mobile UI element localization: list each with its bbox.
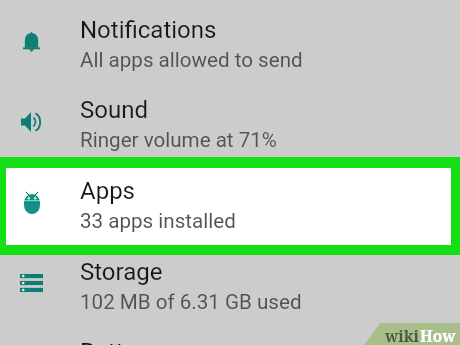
staticText: Storage — [80, 258, 163, 286]
button[interactable]: Sound — [0, 80, 460, 160]
button[interactable]: Notifications — [0, 0, 460, 80]
staticText: Ringer volume at 71% — [80, 128, 277, 152]
other: Storage — [20, 274, 43, 292]
button[interactable]: Apps — [6, 168, 451, 245]
staticText: Notifications — [80, 16, 217, 44]
staticText: Apps — [80, 177, 135, 205]
staticText: 102 MB of 6.31 GB used — [80, 290, 302, 314]
staticText: All apps allowed to send — [80, 48, 303, 72]
other: Apps — [24, 192, 40, 214]
staticText: Battery — [80, 338, 157, 345]
staticText: wiki — [385, 325, 420, 345]
other: Notifications — [23, 31, 40, 52]
button[interactable]: Storage — [0, 242, 460, 322]
staticText: Sound — [80, 96, 148, 124]
other: Sound — [21, 112, 41, 132]
button[interactable]: Battery — [0, 322, 460, 345]
staticText: 33 apps installed — [80, 209, 236, 233]
staticText: How — [420, 325, 456, 345]
